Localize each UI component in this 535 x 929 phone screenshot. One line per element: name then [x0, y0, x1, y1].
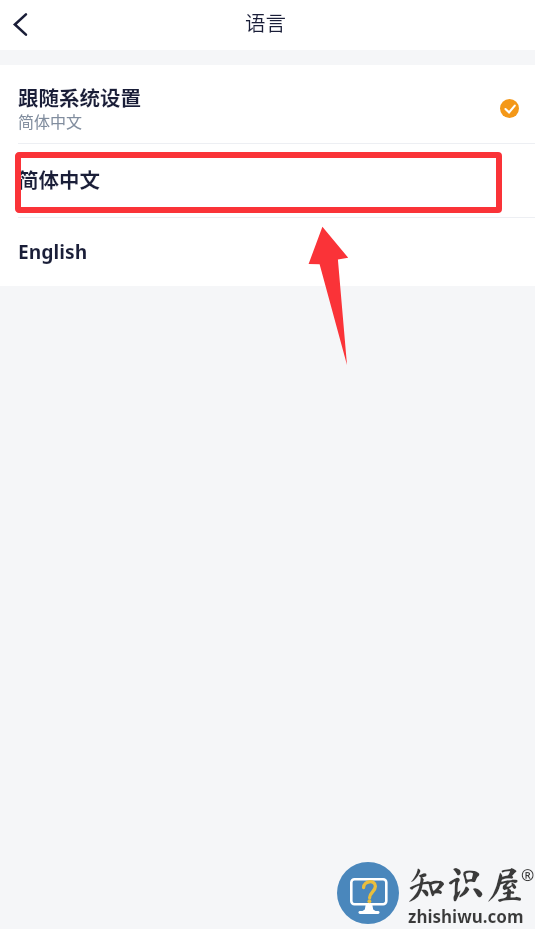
staticText: 跟随系统设置 — [18, 82, 141, 112]
staticText: 简体中文 — [18, 164, 100, 194]
button[interactable]: Back — [0, 0, 44, 50]
button[interactable]: English — [0, 218, 535, 286]
staticText: English — [18, 238, 88, 264]
staticText: 知识屋 — [407, 865, 525, 904]
staticText: ® — [521, 864, 535, 886]
staticText: zhishiwu.com — [408, 905, 524, 928]
button[interactable]: 跟随系统设置 — [0, 65, 535, 143]
staticText: 语言 — [245, 7, 286, 37]
staticText: 简体中文 — [18, 109, 83, 132]
button[interactable]: 简体中文 — [0, 144, 535, 217]
